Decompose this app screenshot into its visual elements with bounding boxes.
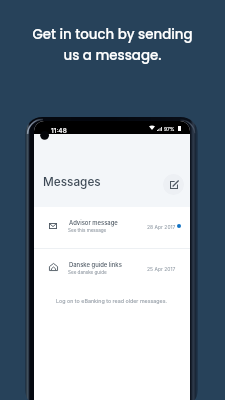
staticText: Get in touch by sending <box>32 25 193 44</box>
staticText: Log on to eBanking to read older message… <box>56 298 168 304</box>
button[interactable]: Advisor message <box>34 207 190 248</box>
staticText: Danske guide links <box>69 261 122 268</box>
staticText: Advisor message <box>69 219 118 226</box>
staticText: See danske guide <box>68 270 107 276</box>
staticText: 25 Apr 2017 <box>147 266 176 272</box>
staticText: us a message. <box>63 46 162 65</box>
staticText: 28 Apr 2017 <box>147 224 176 230</box>
staticText: Messages <box>43 175 101 189</box>
button[interactable]: Danske guide links <box>34 249 190 290</box>
staticText: See this message <box>68 228 107 234</box>
staticText: 11:48 <box>51 127 67 135</box>
button[interactable]: Compose message <box>163 174 184 195</box>
staticText: 97% <box>164 126 175 132</box>
